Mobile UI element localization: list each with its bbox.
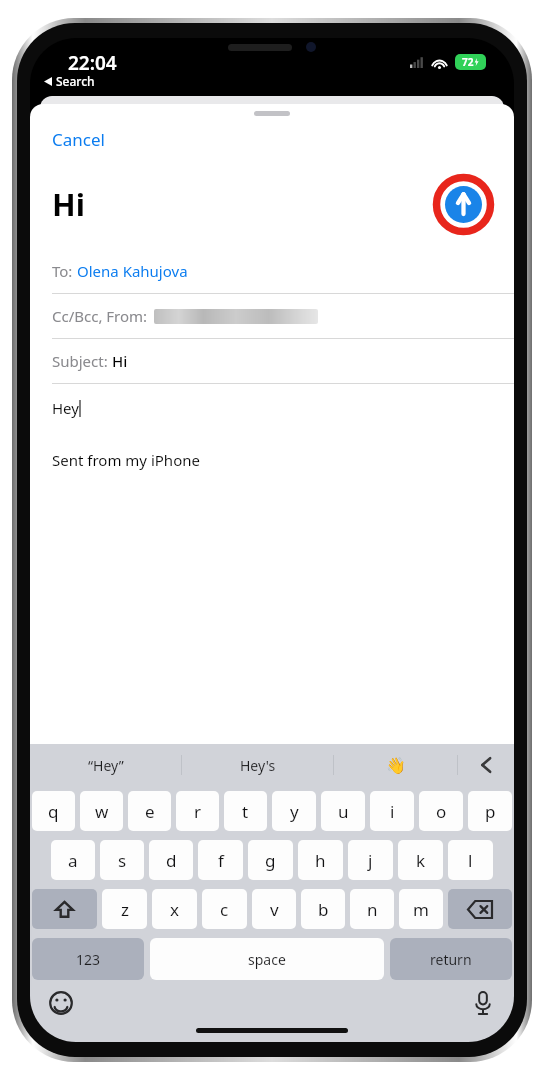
staticText: h	[315, 849, 326, 872]
button[interactable]: m	[399, 889, 443, 929]
staticText: t	[242, 800, 249, 823]
staticText: f	[218, 849, 224, 872]
staticText: j	[368, 849, 373, 872]
button[interactable]: p	[468, 791, 512, 831]
button[interactable]: “Hey”	[30, 744, 181, 786]
button[interactable]: o	[419, 791, 463, 831]
staticText: 123	[76, 950, 101, 969]
staticText: i	[390, 800, 395, 823]
staticText: “Hey”	[88, 756, 124, 775]
staticText: m	[413, 898, 429, 921]
staticText: 22:04	[68, 50, 117, 76]
button[interactable]: d	[149, 840, 193, 880]
staticText: w	[95, 800, 109, 823]
button[interactable]: h	[298, 840, 343, 880]
button[interactable]: x	[152, 889, 197, 929]
staticText: Hey's	[240, 756, 276, 775]
button[interactable]: Emoji keyboard	[46, 988, 76, 1018]
button[interactable]: n	[350, 889, 394, 929]
button[interactable]: Send	[435, 176, 492, 233]
staticText: e	[145, 800, 155, 823]
staticText: c	[220, 898, 229, 921]
staticText: o	[436, 800, 447, 823]
staticText: l	[468, 849, 473, 872]
staticText: r	[194, 800, 202, 823]
staticText: p	[485, 800, 496, 823]
button[interactable]: z	[102, 889, 147, 929]
staticText: k	[416, 849, 426, 872]
staticText: Search	[56, 73, 95, 89]
staticText: d	[166, 849, 177, 872]
button[interactable]: w	[80, 791, 123, 831]
staticText: a	[68, 849, 78, 872]
button[interactable]: Collapse suggestions	[458, 744, 514, 786]
button[interactable]: e	[128, 791, 171, 831]
button[interactable]: b	[301, 889, 345, 929]
button[interactable]: u	[321, 791, 365, 831]
staticText: Subject:	[52, 351, 112, 371]
staticText: 72	[462, 55, 474, 69]
staticText: y	[290, 800, 299, 823]
button[interactable]: y	[272, 791, 316, 831]
button[interactable]: r	[176, 791, 219, 831]
button[interactable]: l	[448, 840, 493, 880]
button[interactable]: g	[248, 840, 293, 880]
button[interactable]: Back to Search	[44, 73, 95, 89]
staticText: g	[265, 849, 276, 872]
button[interactable]: 👋	[334, 744, 457, 786]
staticText: b	[318, 898, 329, 921]
button[interactable]: j	[348, 840, 393, 880]
staticText: 👋	[386, 756, 406, 775]
button[interactable]: Cancel	[52, 128, 105, 151]
button[interactable]: To:	[30, 249, 514, 293]
button[interactable]: t	[224, 791, 267, 831]
staticText: v	[270, 898, 279, 921]
staticText: To:	[52, 261, 77, 281]
staticText: Sent from my iPhone	[52, 450, 200, 470]
button[interactable]: q	[32, 791, 75, 831]
staticText: Hi	[112, 351, 128, 371]
staticText: Olena Kahujova	[77, 261, 188, 281]
staticText: Cc/Bcc, From:	[52, 306, 152, 326]
staticText: q	[48, 800, 59, 823]
button[interactable]: Shift	[32, 889, 97, 929]
button[interactable]: v	[252, 889, 296, 929]
staticText: u	[338, 800, 349, 823]
button[interactable]: Subject:	[30, 339, 514, 383]
staticText: space	[248, 950, 286, 969]
button[interactable]: space	[150, 938, 384, 980]
button[interactable]: c	[202, 889, 247, 929]
staticText: x	[170, 898, 179, 921]
button[interactable]: k	[398, 840, 443, 880]
staticText: z	[121, 898, 129, 921]
button[interactable]: return	[390, 938, 512, 980]
staticText: Hi	[52, 183, 85, 225]
staticText: n	[367, 898, 378, 921]
staticText: return	[430, 950, 472, 969]
button[interactable]: f	[198, 840, 243, 880]
button[interactable]: Backspace	[448, 889, 512, 929]
button[interactable]: s	[100, 840, 144, 880]
button[interactable]: i	[370, 791, 414, 831]
button[interactable]: Hey's	[182, 744, 333, 786]
button[interactable]: Cc/Bcc, From:	[30, 294, 514, 338]
button[interactable]: 123	[32, 938, 144, 980]
button[interactable]: a	[51, 840, 95, 880]
staticText: Hey	[52, 398, 79, 418]
button[interactable]: Dictation	[468, 988, 498, 1018]
staticText: s	[118, 849, 127, 872]
staticText: Cancel	[52, 128, 105, 151]
